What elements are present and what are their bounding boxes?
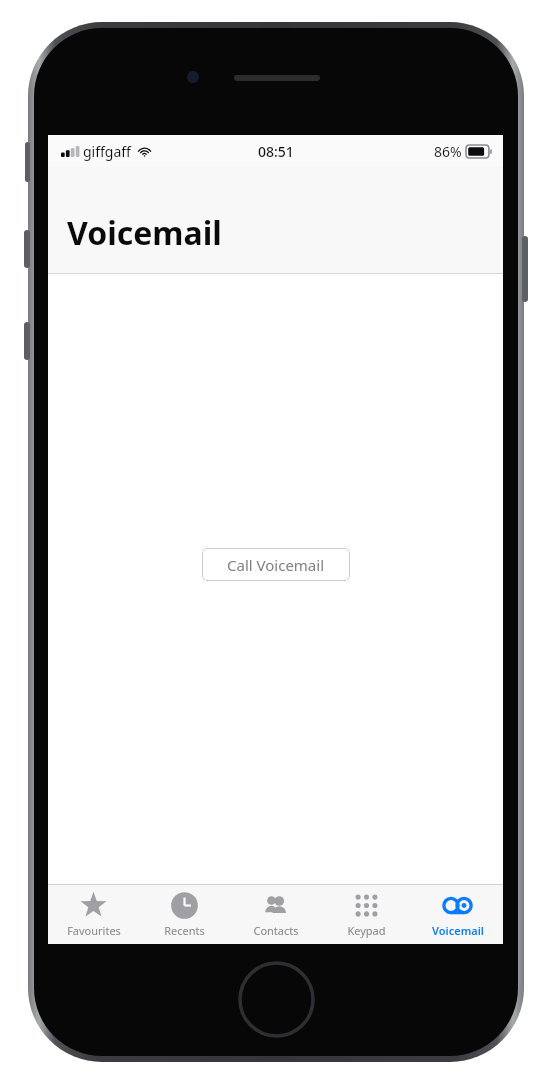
staticText: 86%	[434, 142, 462, 161]
staticText: Voicemail	[432, 923, 484, 938]
button[interactable]: Favourites	[48, 885, 139, 944]
button[interactable]: Recents	[139, 885, 230, 944]
button[interactable]: Call Voicemail	[202, 548, 350, 581]
staticText: Keypad	[347, 923, 386, 938]
staticText: Favourites	[67, 923, 121, 938]
staticText: Recents	[164, 923, 205, 938]
staticText: Contacts	[253, 923, 299, 938]
staticText: Call Voicemail	[227, 555, 325, 575]
button[interactable]: Keypad	[321, 885, 412, 944]
staticText: Voicemail	[67, 211, 222, 255]
button[interactable]: Voicemail	[412, 885, 503, 944]
button[interactable]: Contacts	[230, 885, 321, 944]
staticText: giffgaff	[83, 142, 131, 161]
staticText: 08:51	[258, 142, 294, 161]
